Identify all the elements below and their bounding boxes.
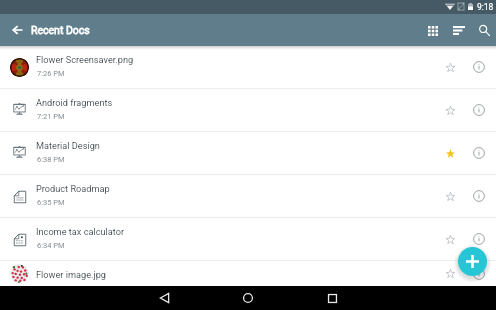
button[interactable]: Flower image.jpg xyxy=(0,261,496,286)
staticText: Income tax calculator xyxy=(36,226,125,237)
button[interactable]: Info xyxy=(464,89,493,131)
staticText: Recent Docs xyxy=(31,24,90,36)
staticText: Flower Screensaver.png xyxy=(36,54,134,65)
button[interactable]: Star xyxy=(436,175,464,217)
button[interactable]: Search xyxy=(472,14,496,46)
button[interactable]: Navigate up xyxy=(0,14,34,46)
button[interactable]: Create new xyxy=(458,247,487,276)
staticText: Flower image.jpg xyxy=(36,269,106,280)
staticText: Android fragments xyxy=(36,97,113,108)
button[interactable]: Product Roadmap xyxy=(0,175,496,217)
button[interactable]: Grid view xyxy=(420,14,446,46)
button[interactable]: Star xyxy=(436,132,464,174)
staticText: 6:38 PM xyxy=(37,155,65,164)
button[interactable]: Info xyxy=(464,218,493,260)
staticText: 6:35 PM xyxy=(37,198,65,207)
button[interactable]: Info xyxy=(464,46,493,88)
button[interactable]: Material Design xyxy=(0,132,496,174)
button[interactable]: Star xyxy=(436,218,464,260)
staticText: 7:21 PM xyxy=(37,112,65,121)
button[interactable]: Income tax calculator xyxy=(0,218,496,260)
button[interactable]: Star xyxy=(436,261,464,286)
button[interactable]: Flower Screensaver.png xyxy=(0,46,496,88)
button[interactable]: Back xyxy=(122,286,206,310)
button[interactable]: Android fragments xyxy=(0,89,496,131)
button[interactable]: Star xyxy=(436,46,464,88)
staticText: Material Design xyxy=(36,140,100,151)
button[interactable]: Recent apps xyxy=(290,286,374,310)
button[interactable]: Info xyxy=(464,261,493,286)
staticText: 6:30 PM xyxy=(37,284,65,293)
button[interactable]: Info xyxy=(464,175,493,217)
button[interactable]: Sort xyxy=(446,14,472,46)
button[interactable]: Home xyxy=(206,286,290,310)
staticText: 6:34 PM xyxy=(37,241,65,250)
button[interactable]: Star xyxy=(436,89,464,131)
staticText: 9:18 xyxy=(477,2,494,12)
staticText: Product Roadmap xyxy=(36,183,110,194)
button[interactable]: Info xyxy=(464,132,493,174)
staticText: 7:26 PM xyxy=(37,69,65,78)
